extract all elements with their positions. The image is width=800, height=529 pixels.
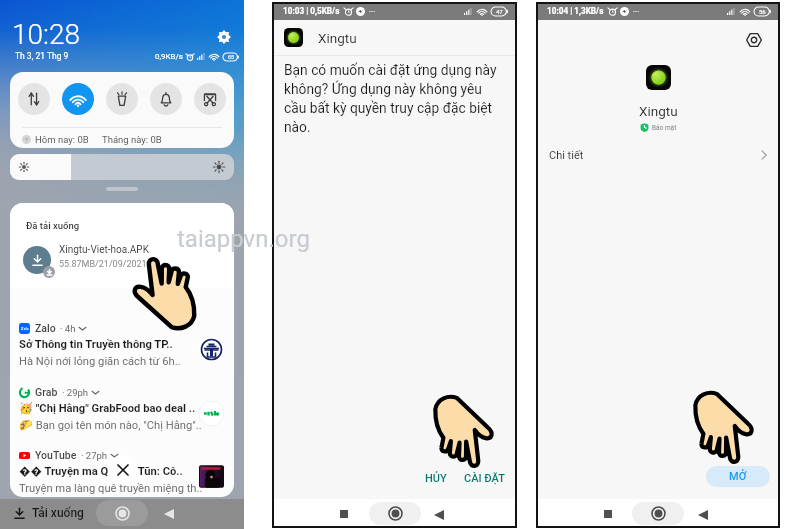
button[interactable]: Settings <box>742 28 766 52</box>
button[interactable]: Home <box>369 502 421 525</box>
button[interactable]: Xingtu-Viet-hoa.APK <box>10 237 234 288</box>
staticText: �� Truyện ma Q A Tũn: Cô.. <box>19 465 183 478</box>
button[interactable]: Back <box>697 509 708 520</box>
staticText: Tải xuống <box>32 506 84 520</box>
button[interactable]: Grab <box>10 380 234 442</box>
button[interactable]: Quick setting <box>106 83 138 115</box>
staticText: taiappvn.org <box>177 225 310 253</box>
staticText: Hà Nội nới lỏng giãn cách từ 6h.. <box>19 355 181 368</box>
button[interactable]: Zalo <box>10 316 234 378</box>
staticText: YouTube <box>35 449 77 461</box>
staticText: · 27ph <box>81 450 108 461</box>
staticText: Hôm nay: 0B <box>35 134 89 145</box>
staticText: Truyện ma làng quê truyền miệng th.. <box>19 482 203 495</box>
button[interactable]: HỦY <box>422 470 450 487</box>
staticText: MỞ <box>729 470 747 483</box>
button[interactable]: Close <box>108 455 137 484</box>
staticText: Bảo mật <box>652 124 677 132</box>
button[interactable]: Quick setting <box>194 83 226 115</box>
staticText: ··· <box>633 7 640 16</box>
staticText: Zalo <box>35 322 56 334</box>
button[interactable]: MỞ <box>706 466 770 487</box>
staticText: Sở Thông tin Truyền thông TP.. <box>19 338 173 351</box>
staticText: · 4h <box>60 323 76 334</box>
button[interactable]: Chi tiết <box>536 141 780 169</box>
button[interactable]: Back <box>163 508 175 520</box>
button[interactable]: Quick setting <box>150 83 182 115</box>
staticText: 🥳 "Chị Hằng" GrabFood bao deal .. <box>19 402 196 415</box>
staticText: Xingtu <box>639 103 678 119</box>
button[interactable]: Quick setting <box>18 83 50 115</box>
staticText: Bạn có muốn cài đặt ứng dụng này không? … <box>284 62 497 135</box>
button[interactable]: Back <box>433 509 444 520</box>
staticText: Grab <box>35 386 58 398</box>
button[interactable]: Tải xuống <box>13 506 84 520</box>
staticText: ? <box>25 136 28 143</box>
staticText: 10:04 | 1,3KB/s <box>547 6 604 16</box>
button[interactable]: YouTube <box>10 443 234 497</box>
staticText: Xingtu <box>318 30 357 46</box>
staticText: 10:28 <box>12 18 81 51</box>
staticText: 55.87MB/21/09/2021 <box>59 259 147 270</box>
button[interactable]: Quick setting <box>62 83 94 115</box>
staticText: 65 <box>228 54 235 60</box>
staticText: 10:03 | 0,5KB/s <box>283 6 340 16</box>
staticText: 0,9KB/s <box>155 52 183 61</box>
staticText: Tháng này: 0B <box>102 134 162 145</box>
staticText: Xingtu-Viet-hoa.APK <box>59 244 149 256</box>
staticText: HỦY <box>425 472 447 485</box>
staticText: 56 <box>759 8 766 15</box>
button[interactable]: CÀI ĐẶT <box>461 470 508 487</box>
button[interactable]: Brightness <box>10 154 234 180</box>
staticText: 47 <box>496 8 503 15</box>
staticText: · 29ph <box>62 387 89 398</box>
staticText: Đã tải xuống <box>26 220 80 231</box>
staticText: Chi tiết <box>549 149 584 162</box>
staticText: Th 3, 21 Thg 9 <box>15 51 69 61</box>
staticText: CÀI ĐẶT <box>464 472 505 485</box>
button[interactable]: Settings <box>214 27 234 47</box>
button[interactable]: Home <box>632 502 684 525</box>
staticText: ··· <box>369 7 376 16</box>
staticText: 🌮 Bạn gọi tên món nào, "Chị Hằng".. <box>19 419 202 432</box>
button[interactable]: Home <box>96 500 148 526</box>
